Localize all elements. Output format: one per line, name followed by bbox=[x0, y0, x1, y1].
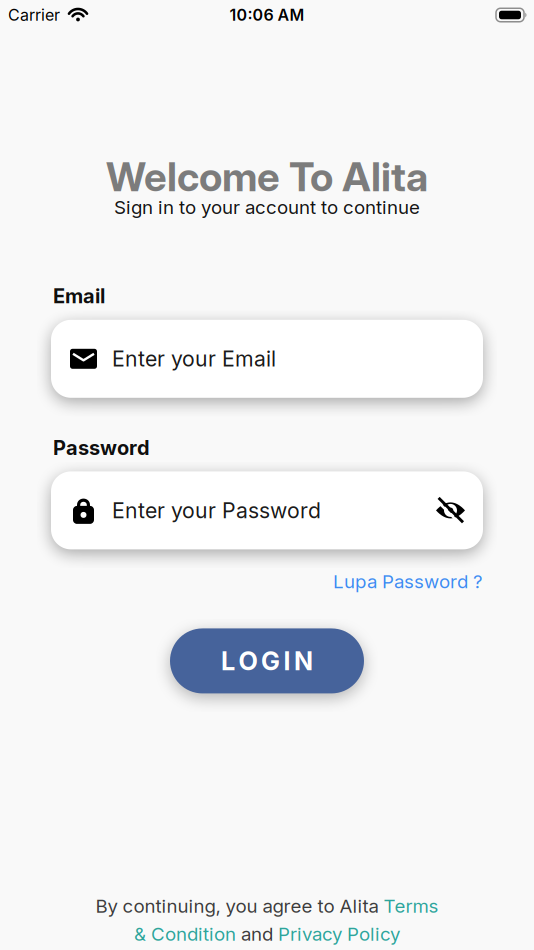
staticText: Welcome To Alita bbox=[106, 153, 428, 200]
staticText: and bbox=[236, 923, 278, 945]
staticText: Privacy Policy bbox=[278, 923, 400, 945]
staticText: Terms bbox=[383, 895, 438, 917]
staticText: Enter your Email bbox=[112, 346, 276, 371]
staticText: LOGIN bbox=[221, 646, 313, 676]
staticText: Password bbox=[53, 436, 150, 459]
staticText: Email bbox=[53, 284, 105, 308]
staticText: Sign in to your account to continue bbox=[114, 196, 420, 218]
staticText: By continuing, you agree to Alita bbox=[95, 895, 383, 917]
staticText: 10:06 AM bbox=[229, 6, 304, 24]
staticText: Lupa Password ? bbox=[333, 570, 483, 592]
staticText: Enter your Password bbox=[112, 498, 321, 523]
staticText: Carrier bbox=[8, 6, 60, 24]
staticText: & Condition bbox=[134, 923, 236, 945]
